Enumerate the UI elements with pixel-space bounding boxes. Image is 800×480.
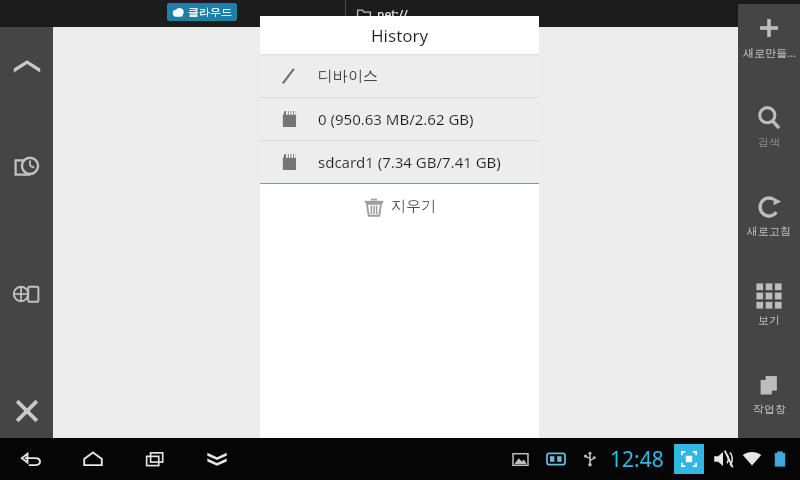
button[interactable]: sdcard1 (7.34 GB/7.41 GB) — [260, 141, 539, 183]
button[interactable]: 새로만들… — [738, 14, 800, 82]
staticText: History — [371, 24, 429, 47]
staticText: 디바이스 — [318, 67, 378, 86]
staticText: 새로만들… — [743, 45, 796, 60]
button[interactable]: 새로고침 — [738, 193, 800, 260]
button[interactable]: net:// — [356, 0, 408, 27]
button[interactable]: 클라우드 — [167, 3, 237, 21]
staticText: net:// — [377, 6, 408, 22]
staticText: 12:48 — [610, 445, 664, 474]
button[interactable]: Close — [0, 355, 53, 467]
staticText: 작업창 — [753, 402, 786, 416]
staticText: 보기 — [758, 313, 780, 327]
staticText: 클라우드 — [188, 5, 232, 19]
staticText: 0 (950.63 MB/2.62 GB) — [318, 109, 474, 129]
button[interactable]: 보기 — [738, 282, 800, 349]
button[interactable]: 지우기 — [260, 184, 539, 229]
button[interactable]: 디바이스 — [260, 55, 539, 97]
button[interactable]: Hide — [186, 438, 248, 480]
button[interactable]: Fullscreen — [674, 444, 704, 474]
button[interactable]: Recents — [124, 438, 186, 480]
button[interactable]: Screenshot — [506, 445, 534, 473]
button[interactable]: Home — [62, 438, 124, 480]
button[interactable]: Network — [0, 232, 53, 355]
button[interactable]: Back — [0, 438, 62, 480]
button[interactable]: 검색 — [738, 104, 800, 171]
staticText: sdcard1 (7.34 GB/7.41 GB) — [318, 152, 501, 172]
button[interactable]: 작업창 — [738, 371, 800, 438]
staticText: 지우기 — [391, 197, 436, 216]
button[interactable]: Up — [0, 27, 53, 102]
staticText: 새로고침 — [747, 224, 791, 238]
staticText: 검색 — [758, 135, 780, 149]
button[interactable]: 0 (950.63 MB/2.62 GB) — [260, 98, 539, 140]
button[interactable]: History — [0, 102, 53, 232]
